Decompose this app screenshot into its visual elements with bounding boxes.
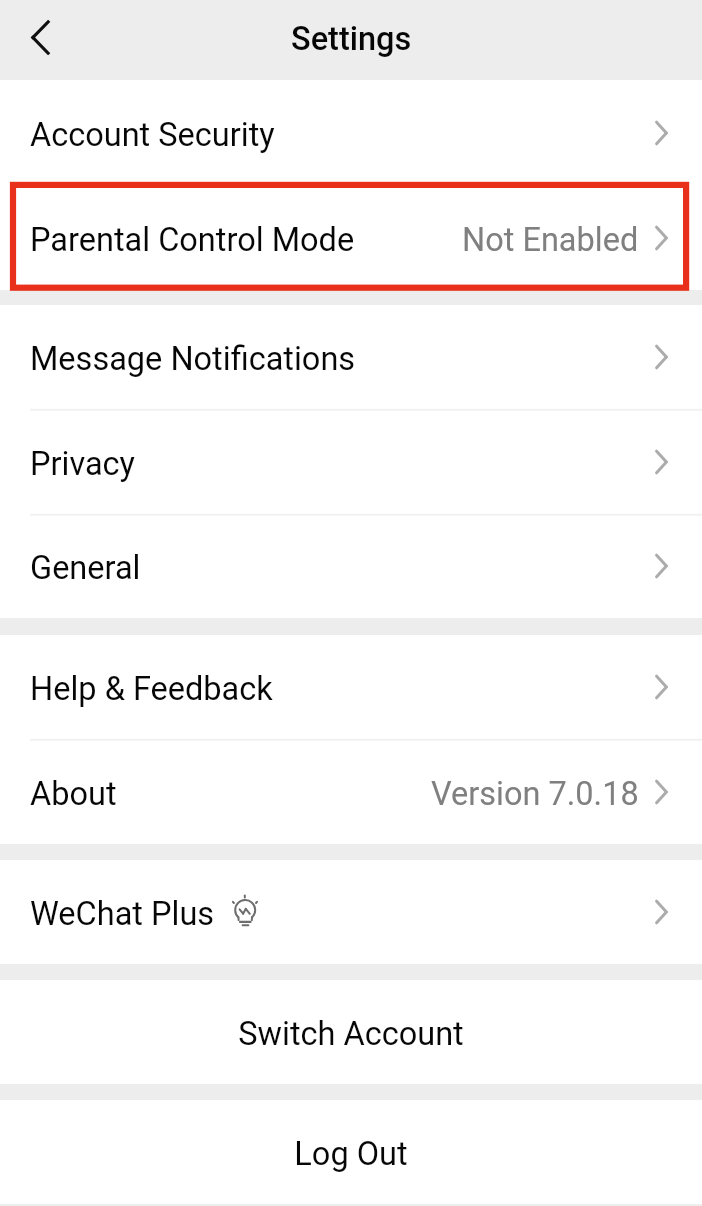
button[interactable]: Parental Control Mode — [0, 185, 702, 290]
button[interactable]: General — [0, 514, 702, 618]
staticText: WeChat Plus — [30, 895, 215, 933]
staticText: About — [30, 775, 117, 813]
staticText: Account Security — [30, 116, 275, 154]
staticText: Parental Control Mode — [30, 221, 355, 259]
button[interactable]: Switch Account — [0, 980, 702, 1084]
staticText: Version 7.0.18 — [431, 775, 639, 813]
staticText: Message Notifications — [30, 340, 356, 378]
staticText: Not Enabled — [462, 221, 639, 259]
button[interactable]: Account Security — [0, 80, 702, 185]
staticText: Help & Feedback — [30, 670, 273, 708]
staticText: Log Out — [294, 1135, 408, 1173]
staticText: Privacy — [30, 445, 135, 483]
button[interactable]: Message Notifications — [0, 305, 702, 409]
button[interactable]: About — [0, 739, 702, 844]
button[interactable]: Help & Feedback — [0, 635, 702, 739]
staticText: Settings — [291, 20, 412, 58]
staticText: General — [30, 549, 141, 587]
button[interactable]: Privacy — [0, 409, 702, 514]
button[interactable]: Back — [11, 8, 69, 66]
button[interactable]: Log Out — [0, 1100, 702, 1204]
button[interactable]: WeChat Plus — [0, 860, 702, 964]
staticText: Switch Account — [238, 1015, 464, 1053]
